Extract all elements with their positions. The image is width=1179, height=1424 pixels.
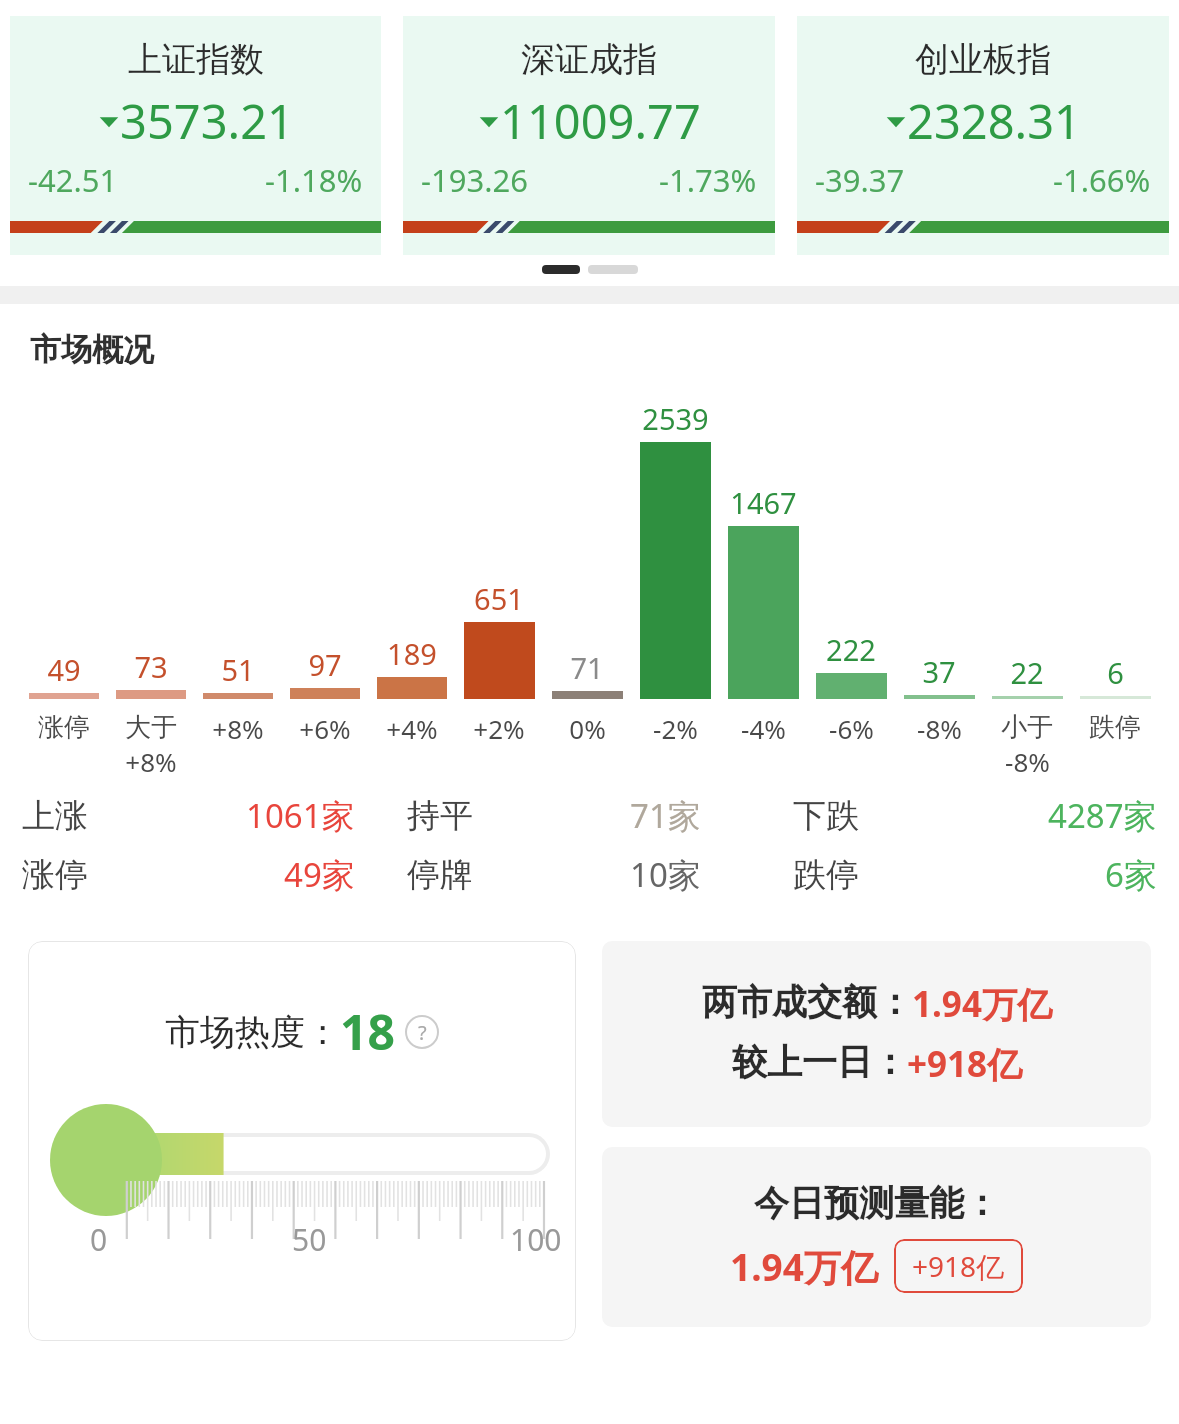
staticText: -8% [917, 711, 962, 746]
staticText: +2% [473, 711, 525, 746]
staticText: -1.66% [1053, 159, 1151, 201]
staticText: 1.94万亿 [730, 1241, 878, 1292]
staticText: -193.26 [421, 159, 528, 201]
staticText: 49家 [284, 852, 355, 897]
staticText: 651 [474, 579, 524, 618]
staticText: 下跌 [793, 795, 859, 837]
staticText: +918亿 [912, 1247, 1005, 1285]
staticText: 189 [387, 634, 437, 673]
staticText: 51 [221, 650, 255, 689]
staticText: 跌停 [1089, 711, 1141, 744]
staticText: 1.94万亿 [912, 980, 1052, 1028]
staticText: 18 [340, 999, 395, 1064]
staticText: -1.18% [265, 159, 363, 201]
staticText: 73 [134, 647, 168, 686]
button[interactable]: 今日预测量能： [602, 1147, 1151, 1327]
staticText: 市场概况 [30, 330, 154, 369]
staticText: 大于 [125, 711, 177, 744]
staticText: 3573.21 [120, 89, 294, 153]
staticText: 2328.31 [907, 89, 1081, 153]
staticText: 22 [1010, 653, 1044, 692]
staticText: -39.37 [815, 159, 905, 201]
staticText: +6% [299, 711, 351, 746]
staticText: 2539 [642, 399, 709, 438]
staticText: +8% [212, 711, 264, 746]
staticText: 222 [826, 630, 876, 669]
button[interactable]: 两市成交额： [602, 941, 1151, 1127]
staticText: 1467 [730, 483, 797, 522]
staticText: 涨停 [38, 711, 90, 744]
staticText: 6 [1107, 653, 1124, 692]
staticText: 0% [569, 711, 606, 746]
staticText: 4287家 [1048, 793, 1157, 838]
staticText: 0 [90, 1219, 108, 1260]
button[interactable]: 帮助说明 [405, 1015, 439, 1049]
staticText: -6% [829, 711, 874, 746]
button[interactable]: 创业板指 [797, 16, 1169, 255]
staticText: 深证成指 [521, 38, 657, 81]
staticText: 97 [308, 645, 342, 684]
staticText: 71家 [630, 793, 701, 838]
staticText: 71 [570, 648, 604, 687]
staticText: 市场热度： [165, 1010, 340, 1054]
staticText: +8% [125, 744, 177, 779]
staticText: 100 [510, 1219, 562, 1260]
staticText: -2% [653, 711, 698, 746]
staticText: -8% [1005, 744, 1050, 779]
staticText: 11009.77 [500, 89, 701, 153]
staticText: 涨停 [22, 854, 88, 896]
staticText: +4% [386, 711, 438, 746]
staticText: 上涨 [22, 795, 88, 837]
staticText: +918亿 [907, 1040, 1023, 1088]
staticText: 50 [292, 1219, 327, 1260]
staticText: 49 [47, 650, 81, 689]
button[interactable]: 上证指数 [10, 16, 381, 255]
staticText: 持平 [407, 795, 473, 837]
staticText: 创业板指 [915, 38, 1051, 81]
button[interactable]: +918亿 [912, 1247, 1005, 1285]
staticText: -4% [741, 711, 786, 746]
staticText: 停牌 [407, 854, 473, 896]
staticText: 10家 [630, 852, 701, 897]
staticText: -42.51 [28, 159, 118, 201]
staticText: 较上一日： [732, 1040, 907, 1084]
button[interactable]: 市场热度： [28, 941, 576, 1341]
staticText: 跌停 [793, 854, 859, 896]
staticText: 小于 [1001, 711, 1053, 744]
staticText: 上证指数 [128, 38, 264, 81]
staticText: 1061家 [246, 793, 355, 838]
staticText: 6家 [1105, 852, 1157, 897]
staticText: 两市成交额： [702, 980, 912, 1024]
staticText: 今日预测量能： [754, 1181, 999, 1225]
staticText: 37 [922, 652, 956, 691]
staticText: ? [418, 1019, 427, 1046]
button[interactable]: 深证成指 [403, 16, 775, 255]
staticText: -1.73% [659, 159, 757, 201]
